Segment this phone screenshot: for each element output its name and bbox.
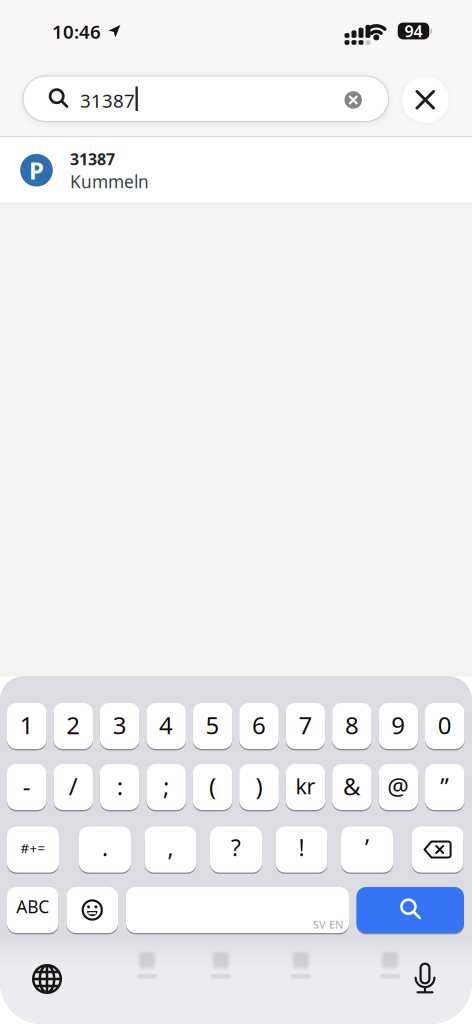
staticText: 8 <box>345 709 359 741</box>
button[interactable]: Space <box>126 887 349 933</box>
button[interactable]: Dictation <box>414 962 436 994</box>
button[interactable]: 9 <box>379 703 418 749</box>
staticText: 3 <box>113 709 127 741</box>
button[interactable]: 31387 <box>23 76 388 121</box>
button[interactable]: - <box>7 764 46 810</box>
staticText: : <box>117 770 123 802</box>
button[interactable]: Emoji <box>66 887 118 933</box>
staticText: 0 <box>438 709 452 741</box>
button[interactable]: Delete <box>411 826 463 872</box>
staticText: ? <box>231 832 241 862</box>
button[interactable]: 5 <box>193 703 232 749</box>
staticText: kr <box>295 772 315 800</box>
staticText: 4 <box>159 709 173 741</box>
button[interactable]: kr <box>286 764 325 810</box>
button[interactable]: & <box>332 764 372 810</box>
button[interactable]: Clear text <box>344 91 362 109</box>
staticText: @ <box>387 770 409 802</box>
button[interactable]: ( <box>193 764 232 810</box>
button[interactable]: ? <box>210 826 262 872</box>
button[interactable]: Next keyboard <box>32 964 62 994</box>
button[interactable]: ; <box>146 764 186 810</box>
button[interactable]: / <box>53 764 93 810</box>
staticText: . <box>102 832 108 862</box>
button[interactable]: ” <box>425 764 465 810</box>
staticText: SV EN <box>313 917 343 932</box>
button[interactable]: #+= <box>7 826 59 872</box>
button[interactable]: 1 <box>7 703 46 749</box>
staticText: ) <box>255 770 262 802</box>
button[interactable]: ! <box>275 826 327 872</box>
staticText: 31387 <box>70 148 115 169</box>
staticText: , <box>167 832 173 862</box>
button[interactable]: 8 <box>332 703 372 749</box>
button[interactable]: Search <box>356 887 464 933</box>
button[interactable]: 2 <box>53 703 93 749</box>
staticText: 2 <box>66 709 80 741</box>
button[interactable]: P <box>0 137 472 202</box>
staticText: ! <box>298 832 304 862</box>
button[interactable]: 0 <box>425 703 465 749</box>
staticText: P <box>29 154 44 186</box>
staticText: & <box>343 770 361 802</box>
staticText: ; <box>163 770 169 802</box>
button[interactable]: 4 <box>146 703 186 749</box>
button[interactable]: @ <box>379 764 418 810</box>
staticText: 5 <box>206 709 220 741</box>
staticText: - <box>23 770 31 802</box>
button[interactable]: : <box>100 764 139 810</box>
button[interactable]: ABC <box>7 887 58 933</box>
button[interactable]: . <box>79 826 131 872</box>
button[interactable]: 3 <box>100 703 139 749</box>
button[interactable]: Cancel search <box>402 76 448 123</box>
button[interactable]: , <box>144 826 196 872</box>
staticText: 1 <box>20 709 34 741</box>
staticText: ABC <box>16 895 49 918</box>
staticText: 6 <box>252 709 266 741</box>
staticText: 10:46 <box>52 19 101 44</box>
button[interactable]: 6 <box>239 703 279 749</box>
staticText: ’ <box>365 832 369 862</box>
button[interactable]: 7 <box>286 703 325 749</box>
staticText: / <box>69 770 78 802</box>
staticText: ( <box>209 770 216 802</box>
button[interactable]: ) <box>239 764 279 810</box>
staticText: 31387 <box>80 88 135 113</box>
button[interactable]: ’ <box>341 826 393 872</box>
staticText: #+= <box>20 839 45 857</box>
staticText: 94 <box>404 20 422 42</box>
staticText: 9 <box>391 709 405 741</box>
staticText: 7 <box>298 709 312 741</box>
staticText: Kummeln <box>70 170 149 193</box>
staticText: ” <box>440 770 449 802</box>
